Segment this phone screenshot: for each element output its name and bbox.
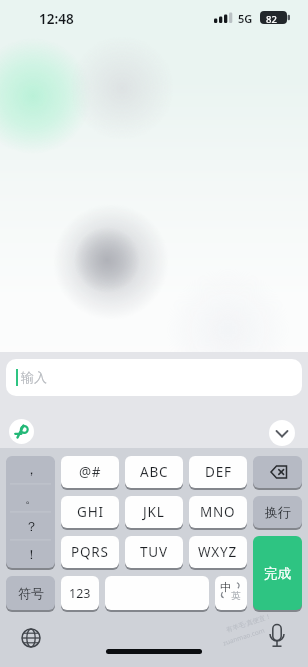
staticText: JKL: [143, 503, 165, 521]
button[interactable]: [269, 420, 295, 446]
staticText: 完成: [264, 565, 291, 582]
button[interactable]: [17, 624, 45, 652]
staticText: ！: [25, 546, 38, 562]
button[interactable]: DEF: [189, 456, 247, 488]
button[interactable]: [105, 576, 209, 610]
button[interactable]: ABC: [125, 456, 183, 488]
button[interactable]: 符号: [6, 576, 55, 610]
staticText: @#: [79, 463, 101, 481]
staticText: 换行: [265, 504, 291, 520]
button[interactable]: JKL: [125, 496, 183, 528]
staticText: 有羊毛·真便宜！: [225, 611, 273, 634]
button[interactable]: @#: [61, 456, 119, 488]
staticText: ABC: [140, 463, 169, 481]
button[interactable]: GHI: [61, 496, 119, 528]
button[interactable]: [263, 621, 291, 649]
staticText: ？: [25, 518, 38, 534]
button[interactable]: 中: [215, 576, 247, 610]
staticText: 5G: [238, 11, 253, 26]
button[interactable]: ，: [6, 456, 55, 568]
staticText: 82: [266, 13, 277, 26]
staticText: WXYZ: [198, 543, 238, 561]
staticText: 英: [231, 590, 241, 602]
staticText: 中: [220, 580, 231, 594]
staticText: 输入: [21, 369, 47, 385]
button[interactable]: WXYZ: [189, 536, 247, 568]
staticText: DEF: [205, 463, 232, 481]
button[interactable]: 换行: [253, 496, 302, 528]
button[interactable]: [253, 456, 302, 488]
staticText: MNO: [200, 503, 236, 521]
staticText: 123: [69, 585, 91, 602]
staticText: 12:48: [39, 10, 74, 28]
button[interactable]: 完成: [253, 536, 302, 610]
staticText: ，: [25, 461, 38, 477]
button[interactable]: MNO: [189, 496, 247, 528]
button[interactable]: PQRS: [61, 536, 119, 568]
staticText: GHI: [77, 503, 104, 521]
staticText: PQRS: [71, 543, 109, 561]
button[interactable]: TUV: [125, 536, 183, 568]
button[interactable]: 输入: [6, 359, 302, 396]
staticText: 符号: [18, 585, 44, 601]
staticText: zuanmao.com: [222, 625, 266, 648]
staticText: 。: [25, 490, 38, 506]
staticText: TUV: [140, 543, 168, 561]
button[interactable]: [9, 419, 34, 444]
button[interactable]: 123: [61, 576, 99, 610]
